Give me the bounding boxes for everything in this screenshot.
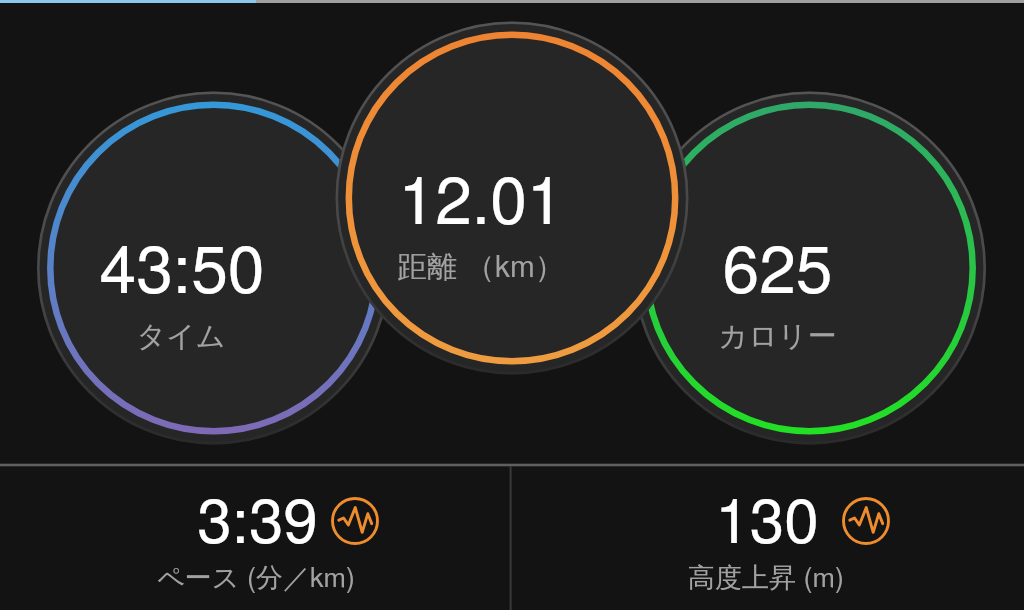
other: Heart rate: [842, 497, 890, 545]
button[interactable]: 12.01: [336, 22, 689, 375]
staticText: 625: [722, 217, 833, 312]
staticText: 130: [715, 472, 819, 561]
button[interactable]: 625: [633, 92, 986, 445]
button[interactable]: 43:50: [37, 92, 390, 445]
staticText: 12.01: [398, 148, 564, 243]
staticText: タイム: [136, 318, 226, 355]
other: Heart rate: [331, 497, 379, 545]
staticText: カロリー: [718, 318, 837, 355]
button[interactable]: 3:39: [0, 466, 512, 610]
staticText: ペース (分／km): [157, 556, 355, 595]
staticText: 43:50: [99, 217, 265, 312]
staticText: 距離 （km）: [397, 243, 565, 286]
button[interactable]: 130: [512, 466, 1024, 610]
staticText: 高度上昇 (m): [688, 556, 844, 595]
staticText: 3:39: [197, 472, 318, 561]
